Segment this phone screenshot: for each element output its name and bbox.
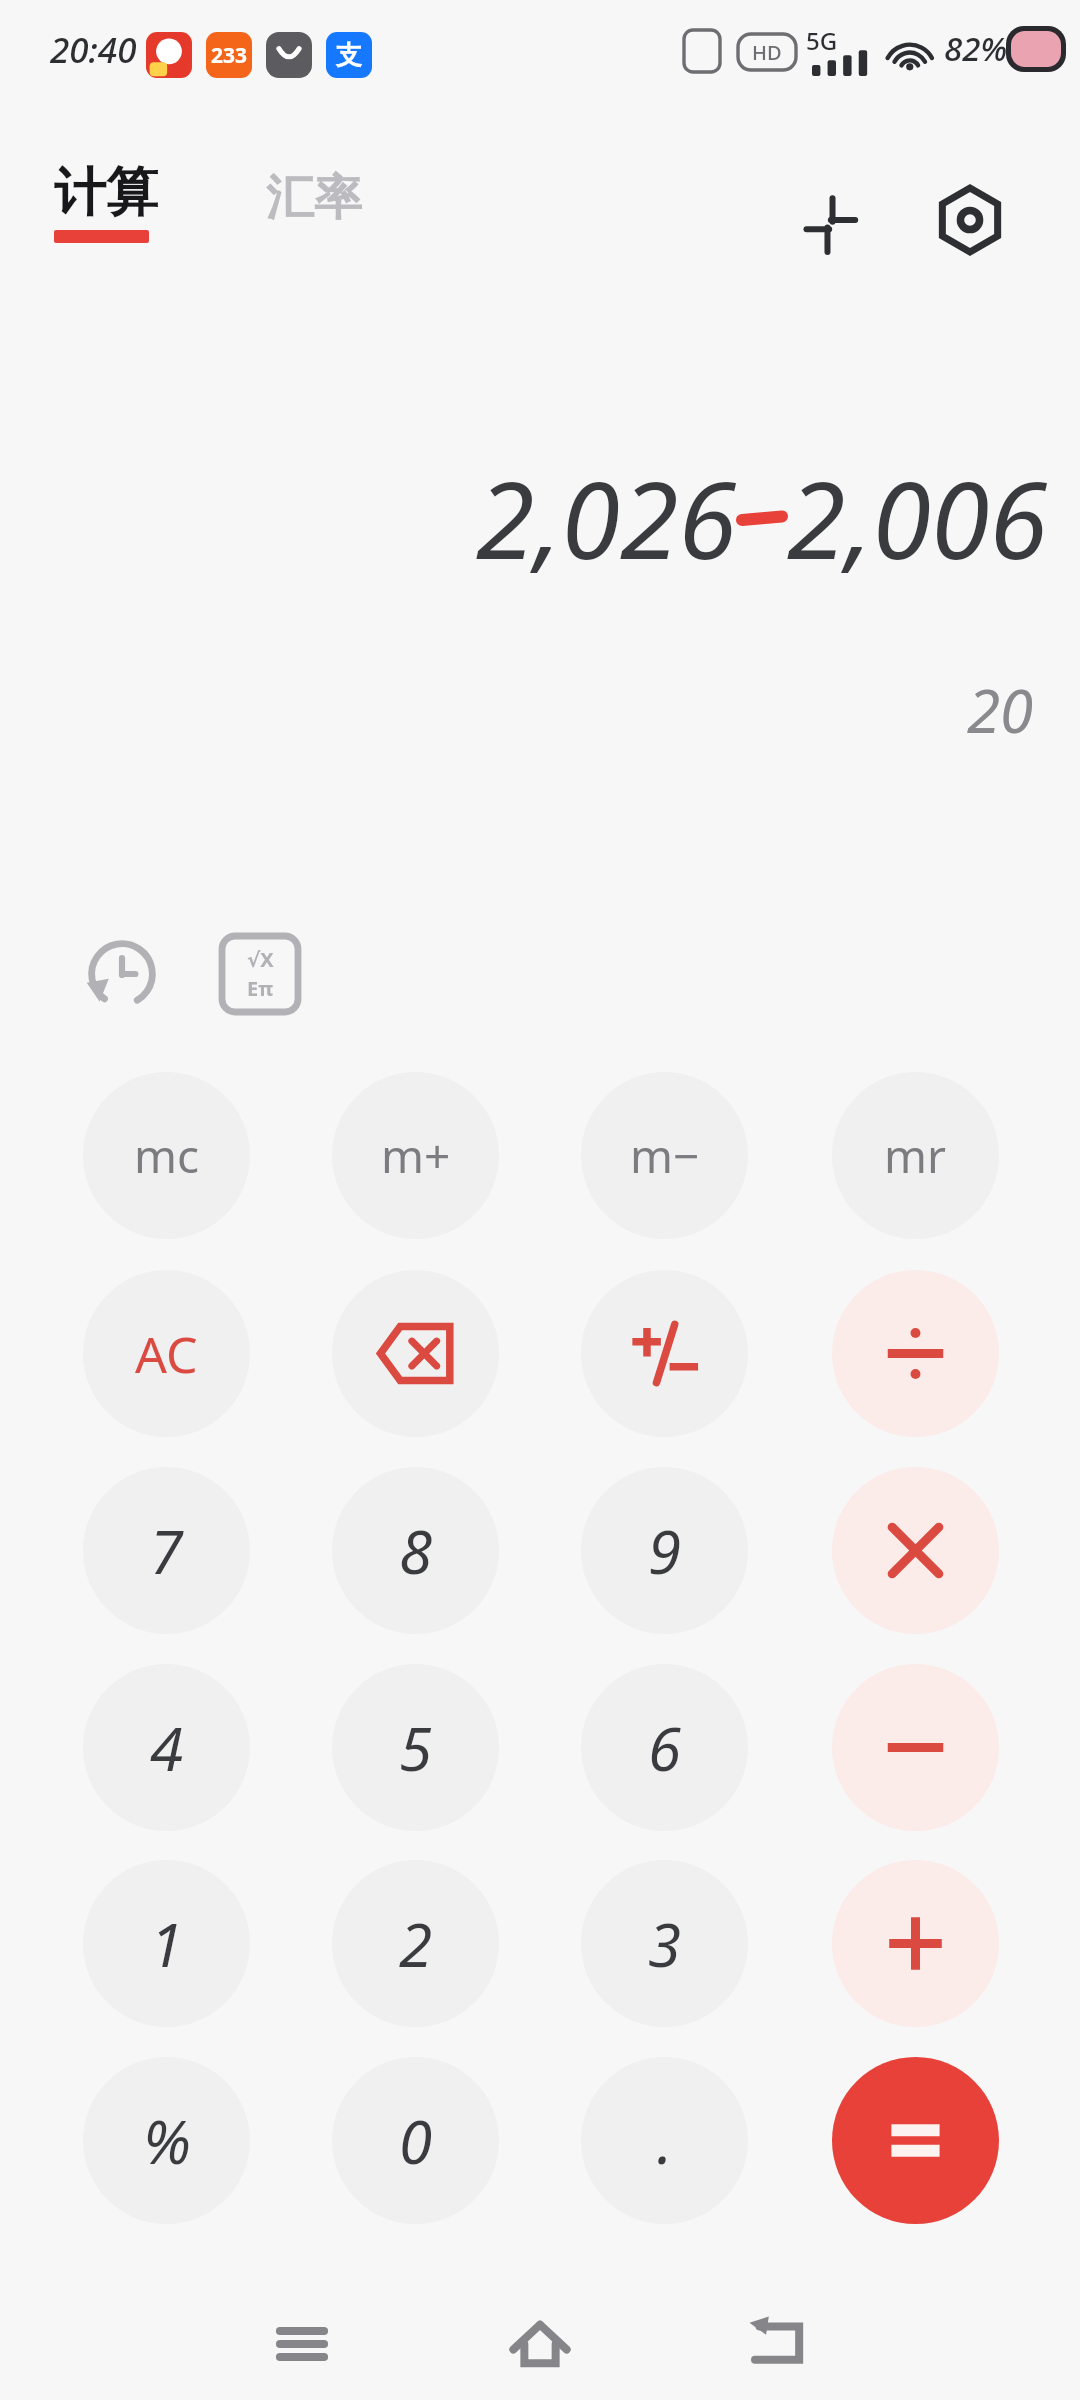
staticText: 20:40 (50, 26, 137, 74)
button[interactable]: Equals (832, 2057, 999, 2224)
button[interactable]: Plus (832, 1860, 999, 2027)
button[interactable]: 0 (332, 2057, 499, 2224)
button[interactable]: 6 (581, 1664, 748, 1831)
staticText: 6 (648, 1707, 682, 1789)
staticText: mr (884, 1124, 947, 1187)
button[interactable]: 5 (332, 1664, 499, 1831)
staticText: 4 (150, 1707, 184, 1789)
staticText: 汇率 (266, 168, 362, 228)
button[interactable]: 1 (83, 1860, 250, 2027)
button[interactable]: Settings (928, 178, 1012, 262)
button[interactable]: 3 (581, 1860, 748, 2027)
button[interactable]: 8 (332, 1467, 499, 1634)
button[interactable]: Back (732, 2298, 824, 2390)
button[interactable]: Multiply (832, 1467, 999, 1634)
staticText: m− (630, 1124, 700, 1187)
staticText: 20 (967, 669, 1034, 751)
staticText: HD (752, 39, 782, 66)
button[interactable]: mc (83, 1072, 250, 1239)
button[interactable]: Backspace (332, 1270, 499, 1437)
staticText: 5 (399, 1707, 433, 1789)
button[interactable]: Minus (832, 1664, 999, 1831)
staticText: 0 (399, 2100, 433, 2182)
staticText: . (657, 2100, 673, 2182)
staticText: 2,026 (476, 446, 737, 590)
staticText: % (143, 2100, 191, 2182)
button[interactable]: Scientific mode (222, 936, 298, 1012)
staticText: 3 (648, 1903, 682, 1985)
button[interactable]: 4 (83, 1664, 250, 1831)
button[interactable]: 9 (581, 1467, 748, 1634)
button[interactable]: m− (581, 1072, 748, 1239)
staticText: 计算 (54, 160, 158, 226)
staticText: mc (134, 1124, 200, 1187)
staticText: Eπ (247, 975, 274, 1002)
button[interactable]: AC (83, 1270, 250, 1437)
button[interactable]: mr (832, 1072, 999, 1239)
button[interactable]: Divide (832, 1270, 999, 1437)
staticText: √X (247, 946, 274, 973)
button[interactable]: . (581, 2057, 748, 2224)
staticText: 支 (336, 39, 362, 72)
staticText: m+ (381, 1124, 451, 1187)
staticText: 5G (806, 24, 838, 57)
button[interactable]: 7 (83, 1467, 250, 1634)
staticText: 9 (648, 1510, 682, 1592)
button[interactable]: m+ (332, 1072, 499, 1239)
staticText: 7 (150, 1510, 184, 1592)
staticText: 1 (150, 1903, 184, 1985)
button[interactable]: Home (494, 2298, 586, 2390)
staticText: 2 (399, 1903, 433, 1985)
button[interactable]: Fullscreen (788, 178, 872, 262)
staticText: 2,006 (787, 446, 1048, 590)
button[interactable]: 计算 (54, 160, 184, 270)
staticText: AC (135, 1320, 198, 1388)
button[interactable]: 汇率 (266, 168, 386, 248)
staticText: 233 (211, 41, 248, 70)
button[interactable]: Plus minus (581, 1270, 748, 1437)
staticText: 8 (399, 1510, 433, 1592)
button[interactable]: % (83, 2057, 250, 2224)
button[interactable]: Recent apps (256, 2298, 348, 2390)
button[interactable]: 2 (332, 1860, 499, 2027)
staticText: 82% (944, 26, 1008, 71)
button[interactable]: History (76, 928, 168, 1020)
